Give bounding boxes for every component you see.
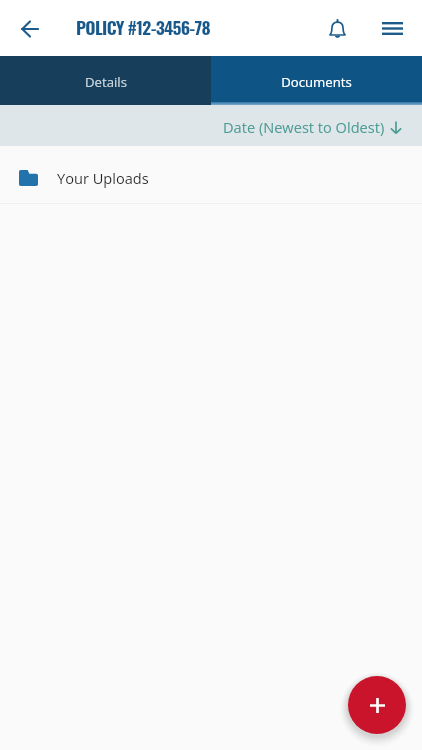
button[interactable]: Date (Newest to Oldest): [207, 116, 422, 136]
staticText: Date (Newest to Oldest): [223, 117, 385, 137]
staticText: Documents: [281, 73, 352, 91]
button[interactable]: Details: [0, 56, 211, 105]
staticText: POLICY #12-3456-78: [76, 14, 211, 40]
button[interactable]: Your Uploads: [0, 146, 422, 203]
button[interactable]: Documents: [211, 56, 422, 105]
button[interactable]: Back: [8, 7, 50, 49]
staticText: Details: [85, 73, 127, 91]
button[interactable]: Menu: [371, 4, 413, 52]
button[interactable]: Notifications: [316, 4, 359, 52]
staticText: Your Uploads: [57, 168, 149, 188]
button[interactable]: Add: [348, 676, 406, 734]
